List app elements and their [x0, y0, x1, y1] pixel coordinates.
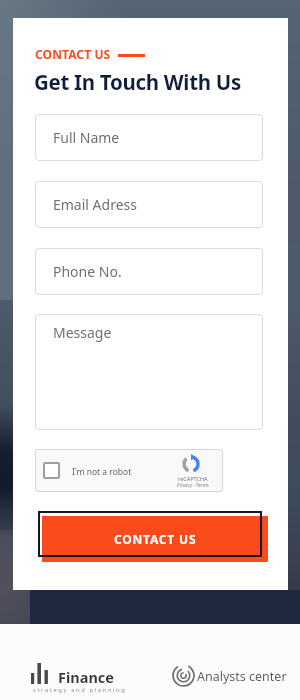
- button[interactable]: Phone No.: [35, 248, 263, 295]
- staticText: Message: [53, 323, 112, 342]
- staticText: Full Name: [53, 128, 120, 147]
- staticText: strategy and planning: [33, 686, 127, 694]
- button[interactable]: Finance: [31, 661, 135, 695]
- button[interactable]: Email Adress: [35, 181, 263, 228]
- staticText: Get In Touch With Us: [34, 68, 241, 96]
- staticText: reCAPTCHA: [178, 475, 208, 482]
- button[interactable]: Message: [35, 314, 263, 430]
- staticText: Privacy - Terms: [177, 482, 209, 488]
- staticText: I'm not a robot: [72, 466, 132, 478]
- button[interactable]: I'm not a robot: [35, 449, 223, 492]
- staticText: Finance: [58, 667, 114, 687]
- staticText: Email Adress: [53, 195, 137, 214]
- button[interactable]: Analysts center: [172, 664, 282, 690]
- button[interactable]: Full Name: [35, 114, 263, 161]
- staticText: Phone No.: [53, 262, 122, 281]
- staticText: CONTACT US: [114, 531, 197, 547]
- staticText: CONTACT US: [35, 46, 111, 62]
- button[interactable]: CONTACT US: [42, 516, 268, 562]
- staticText: Analysts center: [197, 668, 287, 685]
